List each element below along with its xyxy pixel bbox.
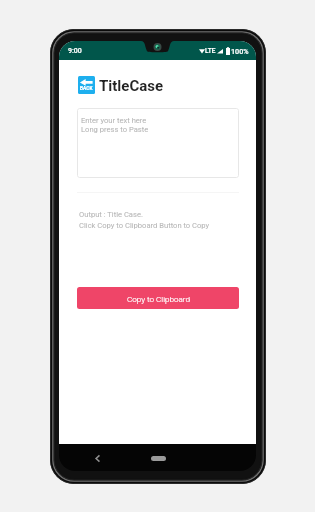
button[interactable]: Copy to Clipboard: [77, 287, 239, 309]
staticText: Enter your text here Long press to Paste: [81, 116, 149, 134]
staticText: 9:00: [68, 47, 82, 55]
button[interactable]: Home: [151, 456, 166, 461]
button[interactable]: Back: [78, 76, 95, 94]
staticText: LTE: [205, 47, 216, 55]
staticText: Output : Title Case.: [79, 210, 143, 219]
staticText: TitleCase: [99, 77, 164, 95]
button[interactable]: Enter your text here Long press to Paste: [77, 108, 239, 178]
staticText: BACK: [80, 86, 93, 92]
staticText: 100%: [231, 47, 249, 55]
staticText: Copy to Clipboard: [127, 294, 190, 303]
staticText: Click Copy to Clipboard Button to Copy: [79, 221, 210, 230]
button[interactable]: Back: [93, 454, 102, 463]
